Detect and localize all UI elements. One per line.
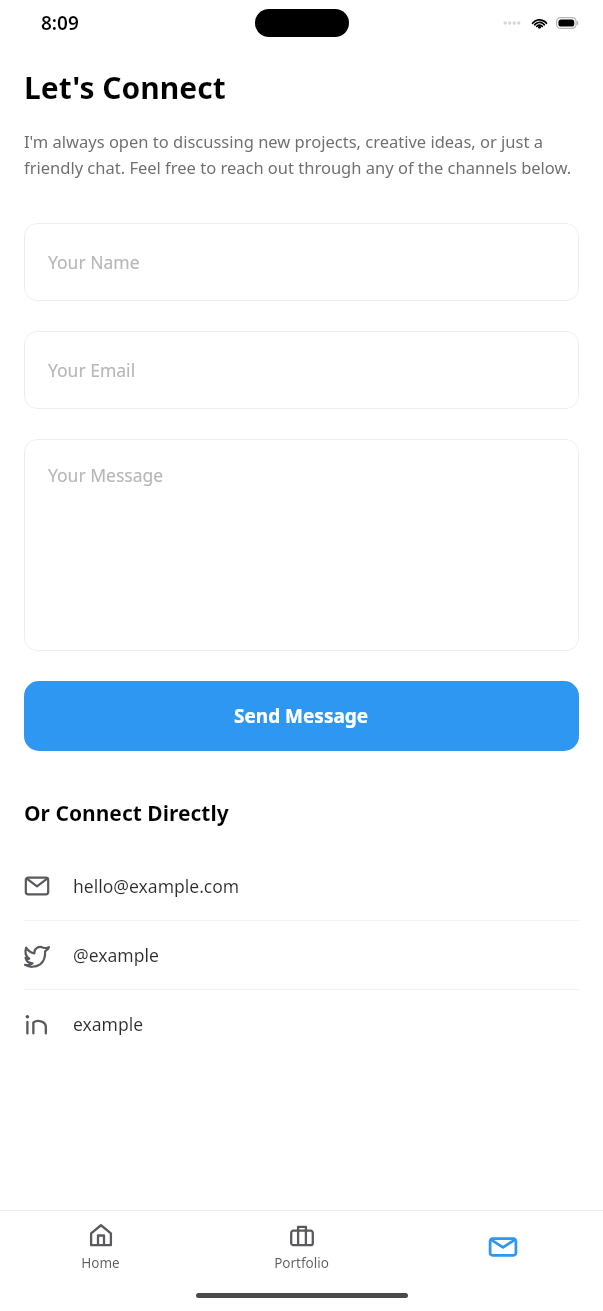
staticText: I'm always open to discussing new projec… — [24, 130, 579, 179]
staticText: Let's Connect — [24, 67, 226, 108]
staticText: Portfolio — [274, 1254, 329, 1272]
staticText: 8:09 — [41, 10, 79, 36]
other: LinkedIn — [24, 1011, 50, 1037]
button[interactable]: Contact — [478, 1224, 528, 1270]
button[interactable]: Send Message — [24, 681, 579, 751]
staticText: @example — [73, 943, 159, 967]
other: Twitter — [24, 942, 50, 968]
button[interactable]: Email — [24, 852, 579, 920]
staticText: Or Connect Directly — [24, 799, 229, 828]
staticText: Your Name — [48, 250, 140, 274]
button[interactable]: Your Email — [24, 331, 579, 409]
staticText: Your Message — [48, 463, 164, 487]
staticText: hello@example.com — [73, 874, 240, 898]
button[interactable]: Your Name — [24, 223, 579, 301]
staticText: Send Message — [234, 703, 369, 729]
button[interactable]: Home — [0, 1218, 201, 1276]
button[interactable]: Your Message — [24, 439, 579, 651]
staticText: example — [73, 1012, 144, 1036]
staticText: Home — [81, 1254, 120, 1272]
button[interactable]: Portfolio — [201, 1218, 402, 1276]
button[interactable]: Twitter — [24, 921, 579, 989]
staticText: Your Email — [48, 358, 136, 382]
other: Email — [24, 873, 50, 899]
button[interactable]: LinkedIn — [24, 990, 579, 1058]
